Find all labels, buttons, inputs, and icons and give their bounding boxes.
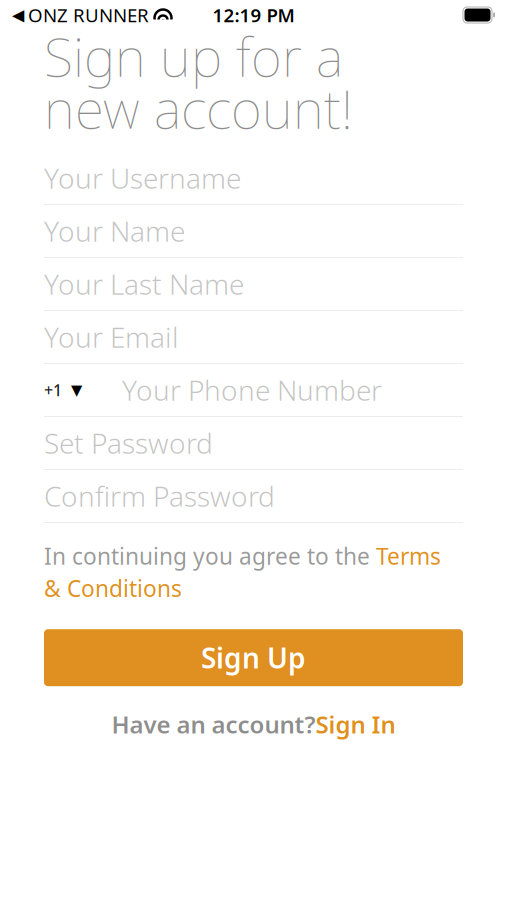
button[interactable]: Have an account? [44,708,463,740]
staticText: Sign Up [201,639,306,676]
staticText: ONZ RUNNER [28,3,149,27]
staticText: Sign up for a [44,21,343,91]
staticText: Your Email [44,318,179,356]
button[interactable]: In continuing you agree to the [44,541,463,603]
staticText: Your Name [44,212,185,250]
staticText: Terms [376,541,441,571]
staticText: Have an account? [111,708,315,740]
staticText: Your Username [44,159,241,197]
staticText: In continuing you agree to the [44,541,376,571]
staticText: Your Last Name [44,265,244,303]
staticText: Set Password [44,424,213,462]
button[interactable]: Country code [44,364,122,416]
staticText: & Conditions [44,573,182,603]
staticText: 12:19 PM [212,3,294,27]
staticText: ▼ [71,382,82,398]
staticText: new account! [44,73,353,143]
staticText: ◀ [12,6,24,24]
staticText: Sign In [315,708,395,740]
staticText: +1 [44,379,62,401]
staticText: Your Phone Number [122,371,382,409]
staticText: Confirm Password [44,477,275,515]
button[interactable]: Sign Up [44,629,463,686]
